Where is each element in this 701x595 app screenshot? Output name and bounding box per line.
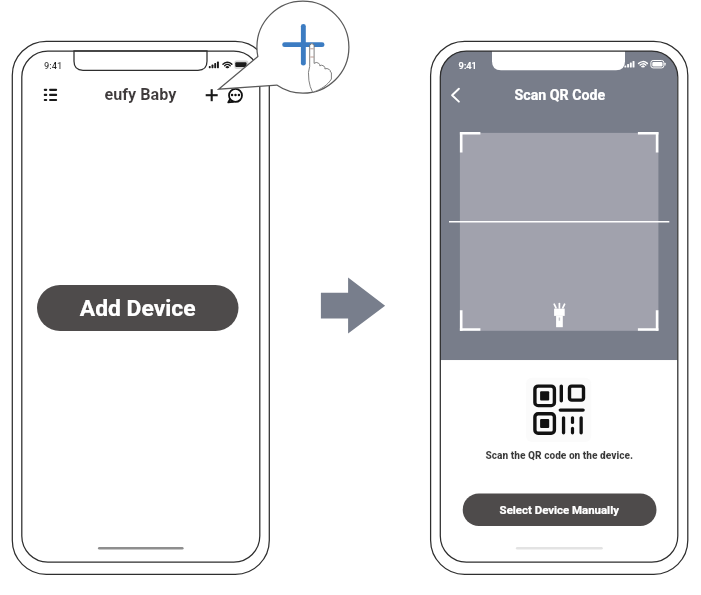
button[interactable]: Flashlight (550, 302, 570, 328)
button[interactable]: Messages (226, 86, 246, 106)
button[interactable]: Add (202, 86, 222, 106)
button[interactable]: Back (447, 85, 467, 107)
button[interactable]: Menu (42, 85, 60, 103)
button[interactable] (463, 493, 657, 526)
button[interactable] (37, 285, 239, 331)
